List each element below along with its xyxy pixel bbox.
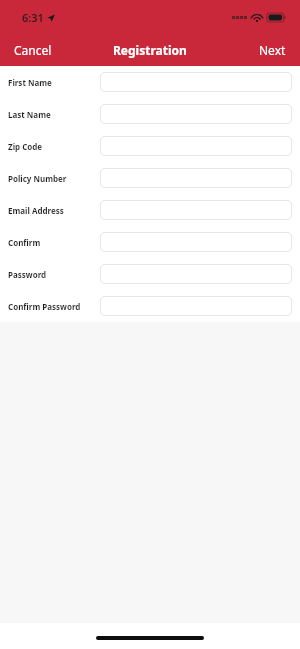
button[interactable]: Password xyxy=(0,258,300,290)
button[interactable]: First Name xyxy=(0,66,300,98)
button[interactable]: Policy Number xyxy=(0,162,300,194)
staticText: Confirm Password xyxy=(8,301,81,312)
button[interactable]: Confirm xyxy=(0,226,300,258)
staticText: Confirm xyxy=(8,237,41,248)
staticText: Policy Number xyxy=(8,173,67,184)
staticText: Next xyxy=(259,42,286,58)
staticText: Email Address xyxy=(8,205,64,216)
staticText: 6:31 xyxy=(22,10,44,25)
button[interactable]: Last Name xyxy=(0,98,300,130)
button[interactable]: Cancel xyxy=(0,36,66,64)
staticText: Zip Code xyxy=(8,141,43,152)
button[interactable]: Confirm Password xyxy=(0,290,300,322)
staticText: Last Name xyxy=(8,109,51,120)
staticText: Password xyxy=(8,269,47,280)
staticText: Cancel xyxy=(14,42,52,58)
button[interactable]: Next xyxy=(245,36,300,64)
button[interactable]: Email Address xyxy=(0,194,300,226)
staticText: First Name xyxy=(8,77,52,88)
staticText: Registration xyxy=(113,42,187,58)
button[interactable]: Zip Code xyxy=(0,130,300,162)
